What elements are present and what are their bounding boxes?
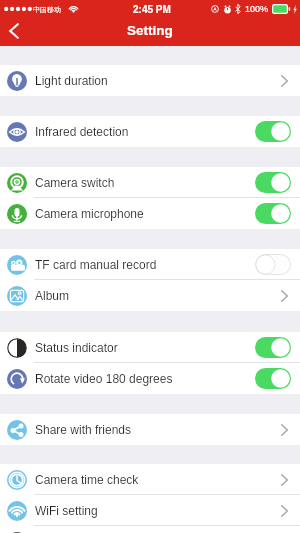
staticText: Album bbox=[35, 289, 70, 302]
button[interactable]: Rotate video 180 degrees bbox=[0, 363, 300, 394]
button[interactable] bbox=[255, 254, 291, 275]
button[interactable]: Light duration bbox=[0, 65, 300, 96]
button[interactable]: Camera microphone bbox=[0, 198, 300, 229]
staticText: Setting bbox=[127, 23, 173, 38]
staticText: Infrared detection bbox=[35, 125, 129, 138]
button[interactable]: Album bbox=[0, 280, 300, 311]
staticText: 2:45 PM bbox=[133, 4, 171, 15]
staticText: Share with friends bbox=[35, 423, 132, 436]
button[interactable]: WiFi setting bbox=[0, 495, 300, 526]
button[interactable]: Camera time check bbox=[0, 464, 300, 495]
button[interactable] bbox=[255, 203, 291, 224]
button[interactable]: Device information bbox=[0, 526, 300, 533]
staticText: WiFi setting bbox=[35, 504, 98, 517]
staticText: TF card manual record bbox=[35, 258, 157, 271]
button[interactable] bbox=[255, 368, 291, 389]
button[interactable] bbox=[255, 121, 291, 142]
staticText: Rotate video 180 degrees bbox=[35, 372, 173, 385]
button[interactable]: Camera switch bbox=[0, 167, 300, 198]
button[interactable]: Share with friends bbox=[0, 414, 300, 445]
staticText: Camera time check bbox=[35, 473, 139, 486]
staticText: 100% bbox=[245, 4, 269, 14]
button[interactable]: Back bbox=[0, 18, 28, 46]
button[interactable] bbox=[255, 172, 291, 193]
button[interactable]: TF card manual record bbox=[0, 249, 300, 280]
button[interactable]: Infrared detection bbox=[0, 116, 300, 147]
staticText: 中国移动 bbox=[33, 5, 61, 14]
staticText: Light duration bbox=[35, 74, 108, 87]
staticText: Camera switch bbox=[35, 176, 115, 189]
button[interactable]: Status indicator bbox=[0, 332, 300, 363]
button[interactable] bbox=[255, 337, 291, 358]
staticText: Camera microphone bbox=[35, 207, 144, 220]
staticText: Status indicator bbox=[35, 341, 118, 354]
